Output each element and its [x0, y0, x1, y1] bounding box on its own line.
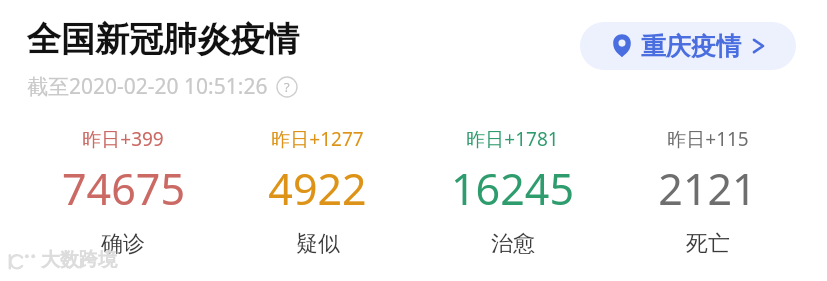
staticText: 昨日+1781	[466, 126, 559, 152]
button[interactable]: 重庆疫情	[580, 22, 796, 70]
staticText: 确诊	[101, 230, 145, 258]
button[interactable]: 说明	[276, 76, 298, 98]
staticText: 74675	[62, 159, 185, 218]
staticText: 疑似	[296, 230, 340, 258]
staticText: ?	[284, 78, 290, 96]
staticText: 截至2020-02-20 10:51:26	[27, 72, 268, 101]
staticText: 4922	[268, 159, 367, 218]
staticText: 昨日+399	[82, 126, 164, 152]
button[interactable]: 昨日+399	[26, 126, 220, 258]
staticText: 重庆疫情	[641, 31, 741, 62]
button[interactable]: 昨日+1277	[220, 126, 415, 258]
staticText: 昨日+115	[667, 126, 749, 152]
staticText: 全国新冠肺炎疫情	[27, 18, 299, 61]
staticText: 16245	[451, 159, 574, 218]
staticText: 昨日+1277	[271, 126, 364, 152]
staticText: 大数跨境	[41, 248, 117, 272]
button[interactable]: 昨日+1781	[415, 126, 610, 258]
staticText: 治愈	[491, 230, 535, 258]
staticText: 死亡	[686, 230, 730, 258]
button[interactable]: 昨日+115	[610, 126, 805, 258]
staticText: 2121	[658, 159, 757, 218]
